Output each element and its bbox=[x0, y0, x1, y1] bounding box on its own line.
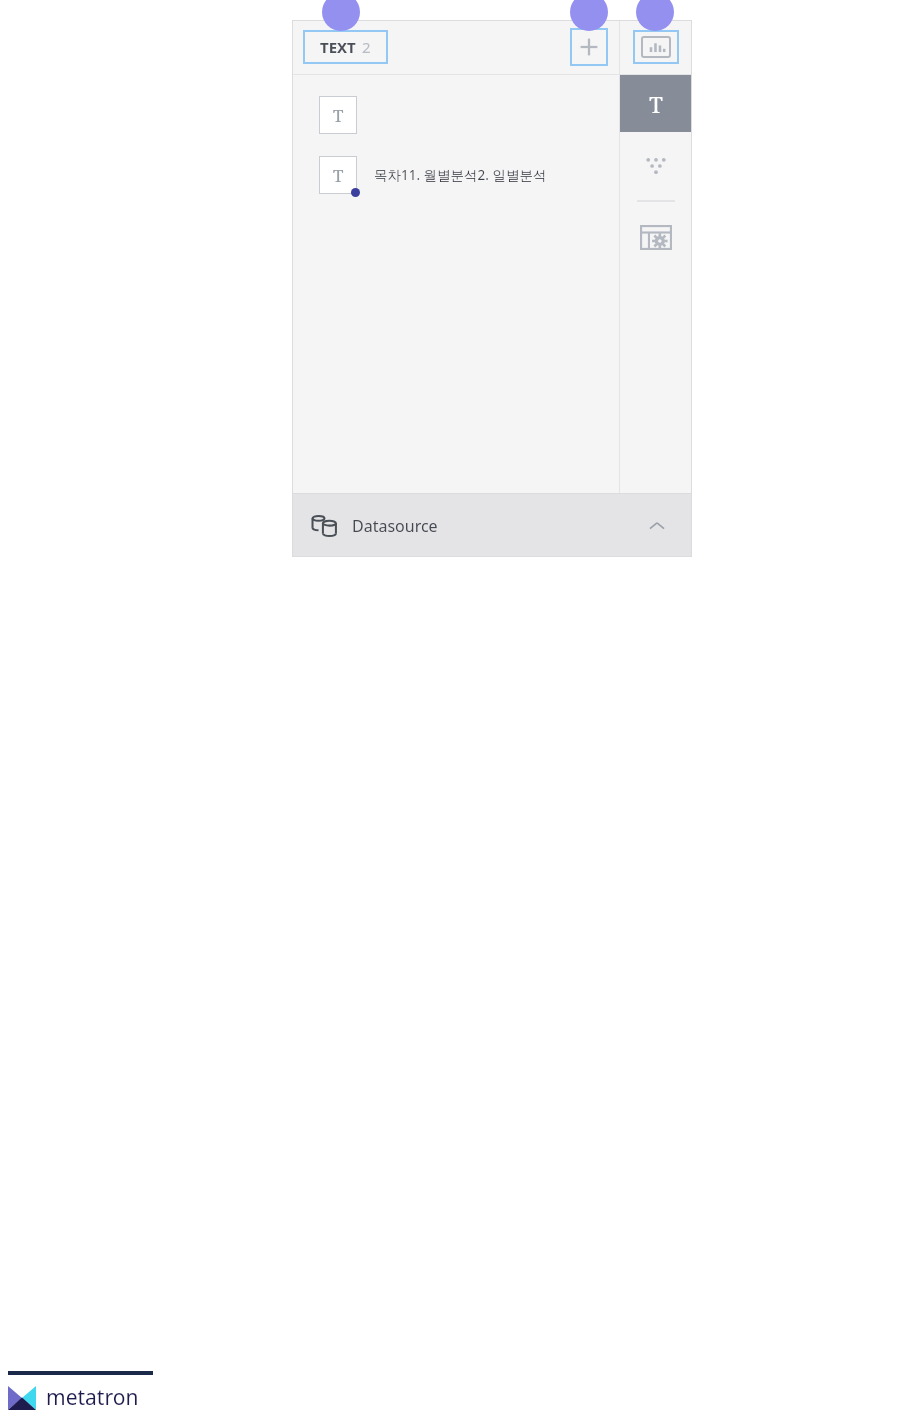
staticText: Datasource bbox=[352, 515, 438, 537]
button[interactable]: Chart panel bbox=[633, 30, 679, 64]
other: Collapse bbox=[640, 509, 674, 543]
staticText: T bbox=[649, 89, 663, 119]
staticText: 목차11. 월별분석2. 일별분석 bbox=[374, 166, 547, 184]
staticText: T bbox=[333, 164, 344, 187]
button[interactable]: Text widgets bbox=[620, 75, 692, 132]
button[interactable]: Pivot widgets bbox=[620, 132, 692, 200]
staticText: TEXT bbox=[320, 37, 356, 57]
button[interactable]: T bbox=[292, 92, 619, 138]
staticText: T bbox=[333, 104, 344, 127]
button[interactable]: TEXT bbox=[303, 30, 388, 64]
staticText: metatron bbox=[46, 1383, 139, 1412]
button[interactable]: Add text widget bbox=[570, 28, 608, 66]
button[interactable]: Layout settings bbox=[620, 202, 692, 272]
staticText: 2 bbox=[362, 37, 371, 57]
button[interactable]: T bbox=[292, 152, 619, 198]
button[interactable]: Datasource bbox=[292, 494, 692, 557]
